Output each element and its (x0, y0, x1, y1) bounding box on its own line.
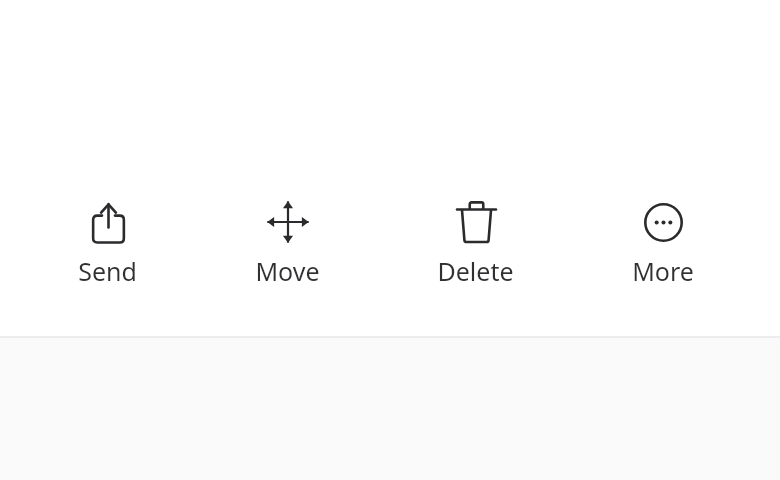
other: Delete (454, 200, 498, 244)
button[interactable]: Delete (431, 196, 520, 292)
button[interactable]: Send (72, 196, 143, 292)
other: More (641, 200, 685, 244)
other: Send (86, 200, 130, 244)
staticText: Delete (437, 254, 514, 288)
staticText: More (632, 254, 694, 288)
other: Move (266, 200, 310, 244)
button[interactable]: More (626, 196, 700, 292)
staticText: Send (78, 254, 137, 288)
staticText: Move (255, 254, 320, 288)
button[interactable]: Move (249, 196, 326, 292)
